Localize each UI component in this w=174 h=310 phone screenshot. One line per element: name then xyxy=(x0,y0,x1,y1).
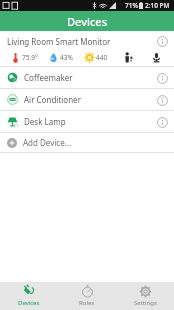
staticText: 75.9° xyxy=(22,53,38,62)
button[interactable]: Rules xyxy=(58,282,116,310)
button[interactable]: Info xyxy=(156,94,168,106)
staticText: Settings xyxy=(134,299,157,307)
staticText: 440 xyxy=(96,53,108,62)
staticText: 71% xyxy=(125,1,138,10)
button[interactable]: Info xyxy=(156,35,168,47)
staticText: Rules xyxy=(79,299,95,307)
staticText: Living Room Smart Monitor xyxy=(7,36,111,47)
staticText: Air Conditioner xyxy=(24,94,81,105)
button[interactable]: Air Conditioner xyxy=(0,89,174,110)
button[interactable]: Info xyxy=(156,72,168,84)
staticText: Coffeemaker xyxy=(24,72,73,83)
button[interactable]: Info xyxy=(156,116,168,128)
button[interactable]: Coffeemaker xyxy=(0,67,174,88)
staticText: Desk Lamp xyxy=(24,116,66,127)
button[interactable]: Desk Lamp xyxy=(0,111,174,132)
staticText: 2:10 PM xyxy=(145,1,170,10)
staticText: Add Device... xyxy=(23,137,72,148)
button[interactable]: Add Device... xyxy=(0,133,174,152)
staticText: Devices xyxy=(18,299,40,307)
button[interactable]: Devices xyxy=(0,282,58,310)
button[interactable]: Living Room Smart Monitor xyxy=(0,31,174,66)
button[interactable]: Settings xyxy=(116,282,174,310)
staticText: Devices xyxy=(67,14,107,29)
staticText: 43% xyxy=(60,53,73,62)
